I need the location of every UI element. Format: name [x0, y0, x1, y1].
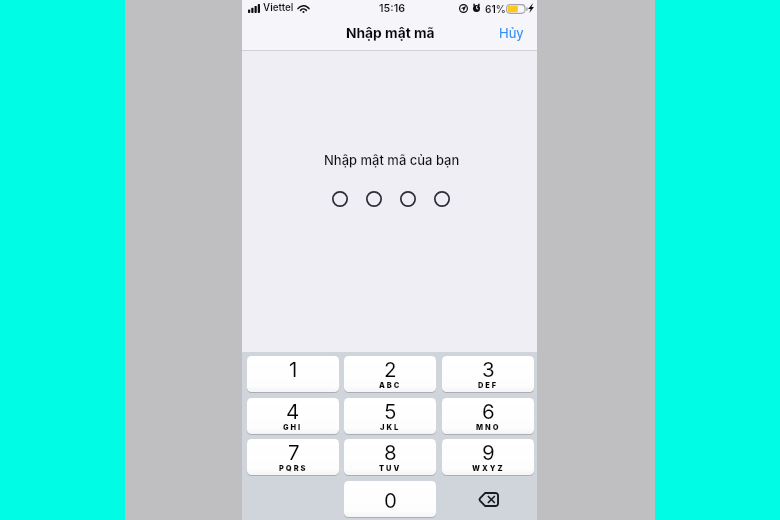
button[interactable]: 3: [442, 356, 534, 392]
staticText: 5: [384, 399, 397, 424]
staticText: 9: [482, 440, 495, 465]
button[interactable]: Delete: [442, 481, 534, 517]
staticText: 3: [482, 357, 495, 382]
staticText: JKL: [380, 423, 401, 432]
staticText: 15:16: [379, 2, 406, 15]
staticText: GHI: [283, 423, 303, 432]
button[interactable]: 1: [247, 356, 339, 392]
staticText: 61%: [485, 3, 506, 15]
staticText: 4: [286, 399, 300, 424]
staticText: 2: [384, 357, 397, 382]
staticText: Hủy: [499, 25, 524, 41]
staticText: PQRS: [279, 464, 308, 473]
button[interactable]: 6: [442, 398, 534, 434]
button[interactable]: 7: [247, 439, 339, 475]
staticText: 8: [384, 440, 397, 465]
staticText: Viettel: [263, 2, 294, 14]
staticText: WXYZ: [472, 464, 505, 473]
button[interactable]: Hủy: [489, 19, 537, 47]
button[interactable]: 5: [344, 398, 436, 434]
staticText: Nhập mật mã: [346, 25, 435, 42]
staticText: MNO: [476, 423, 501, 432]
staticText: Nhập mật mã của bạn: [324, 152, 460, 168]
staticText: 0: [384, 488, 397, 513]
staticText: 1: [289, 357, 298, 382]
staticText: DEF: [478, 381, 499, 390]
staticText: TUV: [379, 464, 402, 473]
staticText: 6: [482, 399, 495, 424]
button[interactable]: 8: [344, 439, 436, 475]
button[interactable]: 4: [247, 398, 339, 434]
button[interactable]: 0: [344, 481, 436, 517]
staticText: ABC: [379, 381, 402, 390]
button[interactable]: 9: [442, 439, 534, 475]
staticText: 7: [288, 440, 300, 465]
button[interactable]: 2: [344, 356, 436, 392]
